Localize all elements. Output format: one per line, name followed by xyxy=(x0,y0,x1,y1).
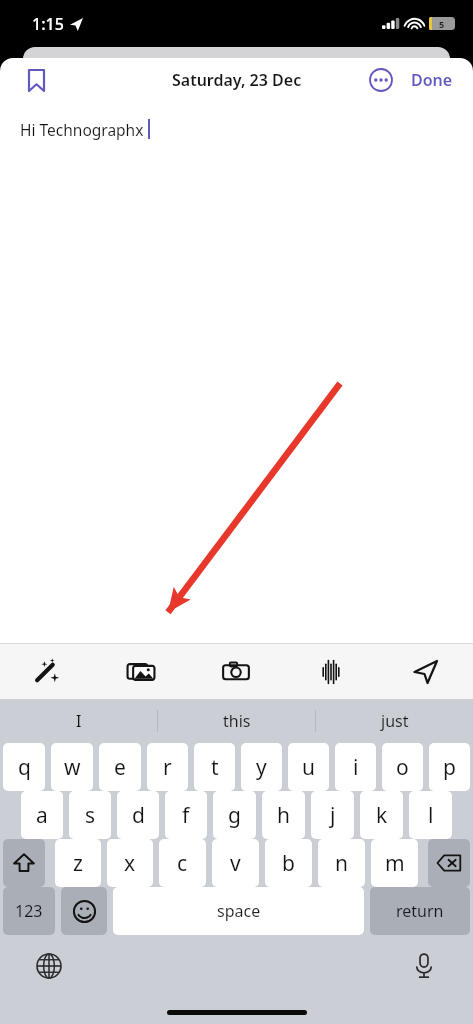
staticText: y xyxy=(256,753,267,782)
button[interactable]: Audio xyxy=(283,644,378,699)
staticText: z xyxy=(73,849,83,878)
staticText: just xyxy=(381,710,409,732)
staticText: w xyxy=(64,753,81,782)
staticText: k xyxy=(376,801,388,830)
button[interactable]: Dictation xyxy=(407,949,441,983)
button[interactable]: e xyxy=(99,743,141,791)
staticText: b xyxy=(282,849,295,878)
button[interactable]: I xyxy=(0,699,157,743)
button[interactable]: t xyxy=(194,743,235,791)
staticText: x xyxy=(124,849,136,878)
button[interactable]: r xyxy=(147,743,188,791)
staticText: Hi Technographx xyxy=(20,119,144,140)
staticText: o xyxy=(396,753,409,782)
staticText: f xyxy=(182,801,190,830)
staticText: I xyxy=(76,710,82,732)
button[interactable]: 123 xyxy=(3,887,55,935)
button[interactable]: Backspace xyxy=(428,839,470,887)
staticText: j xyxy=(330,801,336,830)
button[interactable]: just xyxy=(316,699,473,743)
staticText: this xyxy=(223,710,251,732)
button[interactable]: c xyxy=(159,839,206,887)
button[interactable]: v xyxy=(212,839,259,887)
button[interactable]: Markup xyxy=(0,644,94,699)
staticText: v xyxy=(230,849,241,878)
button[interactable]: l xyxy=(409,791,452,839)
staticText: l xyxy=(428,801,434,830)
staticText: 1:15 xyxy=(32,13,64,35)
button[interactable]: Camera xyxy=(188,644,283,699)
staticText: a xyxy=(36,801,48,830)
button[interactable]: m xyxy=(371,839,418,887)
button[interactable]: z xyxy=(55,839,101,887)
staticText: d xyxy=(132,801,145,830)
button[interactable]: y xyxy=(241,743,282,791)
button[interactable]: o xyxy=(382,743,423,791)
button[interactable]: b xyxy=(265,839,312,887)
button[interactable]: q xyxy=(3,743,45,791)
button[interactable]: f xyxy=(165,791,207,839)
staticText: space xyxy=(217,900,261,922)
button[interactable]: u xyxy=(288,743,329,791)
button[interactable]: w xyxy=(51,743,93,791)
button[interactable]: g xyxy=(213,791,256,839)
staticText: q xyxy=(18,753,31,782)
staticText: g xyxy=(228,801,241,830)
staticText: n xyxy=(335,849,348,878)
button[interactable]: Bookmark xyxy=(18,62,54,98)
button[interactable]: i xyxy=(335,743,376,791)
button[interactable]: Done xyxy=(405,61,459,99)
staticText: 123 xyxy=(15,900,43,922)
button[interactable]: space xyxy=(113,887,364,935)
button[interactable]: More options xyxy=(363,62,399,98)
button[interactable]: Emoji xyxy=(61,887,107,935)
button[interactable]: p xyxy=(429,743,470,791)
staticText: u xyxy=(302,753,315,782)
staticText: h xyxy=(277,801,290,830)
button[interactable]: Change keyboard xyxy=(32,949,66,983)
button[interactable]: k xyxy=(360,791,403,839)
staticText: p xyxy=(443,753,456,782)
button[interactable]: return xyxy=(370,887,470,935)
staticText: Done xyxy=(411,69,453,91)
button[interactable]: Photos xyxy=(94,644,188,699)
button[interactable]: this xyxy=(158,699,315,743)
staticText: c xyxy=(177,849,188,878)
button[interactable]: a xyxy=(21,791,63,839)
staticText: i xyxy=(353,753,359,782)
button[interactable]: Shift xyxy=(3,839,45,887)
staticText: 5 xyxy=(439,18,445,30)
button[interactable]: s xyxy=(69,791,111,839)
button[interactable]: n xyxy=(318,839,365,887)
staticText: Saturday, 23 Dec xyxy=(172,69,302,91)
staticText: s xyxy=(85,801,96,830)
staticText: m xyxy=(385,849,405,878)
button[interactable]: x xyxy=(107,839,153,887)
button[interactable]: j xyxy=(311,791,354,839)
staticText: t xyxy=(211,753,219,782)
staticText: r xyxy=(163,753,172,782)
staticText: return xyxy=(396,900,444,922)
staticText: e xyxy=(114,753,126,782)
button[interactable]: d xyxy=(117,791,159,839)
button[interactable]: Send xyxy=(378,644,473,699)
button[interactable]: h xyxy=(262,791,305,839)
